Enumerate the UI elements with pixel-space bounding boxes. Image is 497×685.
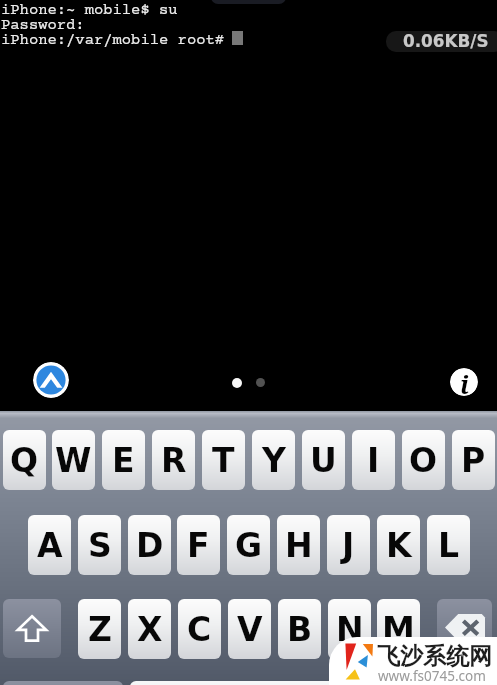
staticText: Z (88, 610, 112, 648)
button[interactable]: K (377, 515, 420, 575)
staticText: www.fs0745.com (378, 667, 486, 685)
staticText: R (161, 441, 187, 479)
staticText: A (37, 526, 63, 564)
button[interactable]: N (328, 599, 371, 659)
button[interactable]: X (128, 599, 171, 659)
button[interactable]: Scroll up (33, 362, 69, 398)
button[interactable]: M (377, 599, 420, 659)
button[interactable]: R (152, 430, 195, 490)
button[interactable]: O (402, 430, 445, 490)
staticText: F (187, 526, 210, 564)
button[interactable]: I (352, 430, 395, 490)
button[interactable]: Y (252, 430, 295, 490)
staticText: W (55, 441, 92, 479)
button[interactable]: P (452, 430, 495, 490)
button[interactable]: Info (450, 368, 478, 396)
button[interactable]: Backspace (437, 599, 492, 658)
button[interactable]: F (177, 515, 220, 575)
staticText: P (461, 441, 486, 479)
button[interactable]: J (327, 515, 370, 575)
staticText: 0.06KB/S (403, 31, 489, 51)
staticText: N (336, 610, 364, 648)
button[interactable]: A (28, 515, 71, 575)
staticText: H (285, 526, 313, 564)
staticText: D (136, 526, 164, 564)
button[interactable]: B (278, 599, 321, 659)
staticText: C (187, 610, 212, 648)
button[interactable]: S (78, 515, 121, 575)
staticText: U (310, 441, 337, 479)
staticText: 飞沙系统网 (377, 642, 492, 671)
staticText: S (88, 526, 112, 564)
button[interactable]: Space (130, 681, 370, 685)
staticText: iPhone:~ mobile$ su (1, 2, 178, 19)
staticText: Y (262, 441, 286, 479)
button[interactable]: Shift (3, 599, 61, 658)
button[interactable]: G (227, 515, 270, 575)
button[interactable]: E (102, 430, 145, 490)
staticText: G (235, 526, 263, 564)
button[interactable]: C (178, 599, 221, 659)
button[interactable]: L (427, 515, 470, 575)
staticText: Q (10, 441, 39, 479)
staticText: M (382, 610, 415, 648)
staticText: L (438, 526, 460, 564)
button[interactable]: H (277, 515, 320, 575)
staticText: i (460, 368, 469, 395)
button[interactable]: D (128, 515, 171, 575)
staticText: X (137, 610, 163, 648)
staticText: K (386, 526, 412, 564)
staticText: Password: (1, 17, 85, 34)
staticText: J (342, 526, 355, 564)
button[interactable]: W (52, 430, 95, 490)
button[interactable]: Q (3, 430, 46, 490)
button[interactable]: T (202, 430, 245, 490)
staticText: T (212, 441, 235, 479)
staticText: V (237, 610, 263, 648)
staticText: O (409, 441, 438, 479)
staticText: iPhone:/var/mobile root# (1, 32, 225, 49)
staticText: E (112, 441, 135, 479)
staticText: I (367, 441, 380, 479)
button[interactable]: Numbers (3, 681, 123, 685)
button[interactable]: U (302, 430, 345, 490)
button[interactable]: V (228, 599, 271, 659)
button[interactable]: Z (78, 599, 121, 659)
staticText: B (287, 610, 313, 648)
